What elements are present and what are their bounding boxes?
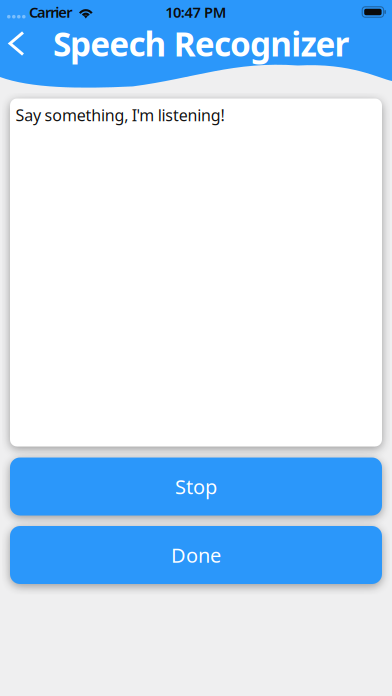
staticText: Done [171, 542, 221, 568]
button[interactable]: Stop [0, 457, 392, 515]
button[interactable]: Back [0, 22, 53, 64]
staticText: Stop [175, 473, 217, 500]
staticText: Speech Recognizer [53, 21, 350, 66]
staticText: 10:47 PM [165, 2, 227, 22]
button[interactable]: Done [0, 526, 392, 584]
staticText: Say something, I'm listening! [15, 104, 224, 126]
staticText: Carrier [29, 2, 72, 22]
